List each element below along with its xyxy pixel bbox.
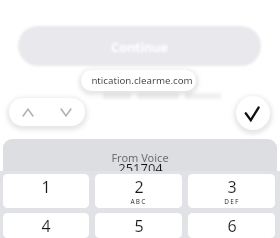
staticText: 1 [41, 176, 51, 198]
button[interactable]: Confirm [236, 96, 270, 130]
staticText: 2 [134, 176, 144, 198]
button[interactable]: 5 [95, 213, 182, 238]
staticText: 3 [227, 176, 237, 198]
staticText: Continue [111, 38, 168, 55]
staticText: 6 [227, 215, 237, 237]
button[interactable]: 2 [95, 174, 182, 208]
staticText: ntication.clearme.com [91, 74, 193, 87]
staticText: ABC [130, 197, 147, 206]
staticText: 5 [134, 215, 144, 237]
staticText: From Voice [111, 150, 169, 165]
button[interactable]: Next field [47, 98, 85, 126]
staticText: DEF [224, 197, 240, 206]
button[interactable]: Previous field [9, 98, 47, 126]
button[interactable]: 6 [188, 213, 275, 238]
button[interactable]: 4 [3, 213, 89, 238]
button[interactable]: 3 [188, 174, 275, 208]
staticText: 4 [41, 215, 51, 237]
button[interactable]: 1 [3, 174, 89, 208]
button[interactable]: ntication.clearme.com [81, 70, 196, 91]
button[interactable]: From Voice [3, 139, 277, 171]
button[interactable]: Continue [18, 26, 261, 66]
staticText: 251704 [118, 159, 163, 171]
